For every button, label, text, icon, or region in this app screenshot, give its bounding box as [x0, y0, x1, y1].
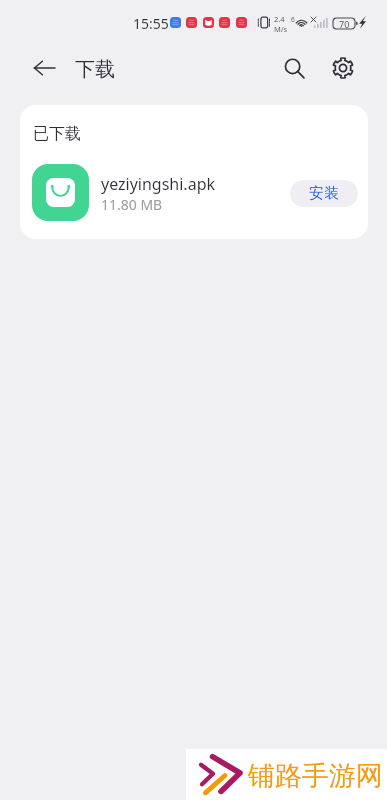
staticText: yeziyingshi.apk [101, 173, 216, 195]
button[interactable]: Settings [321, 46, 365, 90]
staticText: 15:55 [133, 14, 169, 33]
staticText: 铺路手游网 [248, 759, 383, 793]
staticText: 11.80 MB [101, 195, 163, 214]
staticText: 安装 [309, 184, 339, 203]
staticText: 下载 [75, 57, 115, 82]
staticText: 70 [339, 18, 350, 29]
staticText: 2.4 [274, 14, 285, 24]
button[interactable]: Search [272, 46, 316, 90]
staticText: M/s [274, 24, 288, 34]
staticText: 已下载 [33, 124, 81, 144]
button[interactable]: 安装 [290, 180, 358, 207]
button[interactable]: Back [22, 46, 66, 90]
staticText: 6 [291, 15, 295, 24]
